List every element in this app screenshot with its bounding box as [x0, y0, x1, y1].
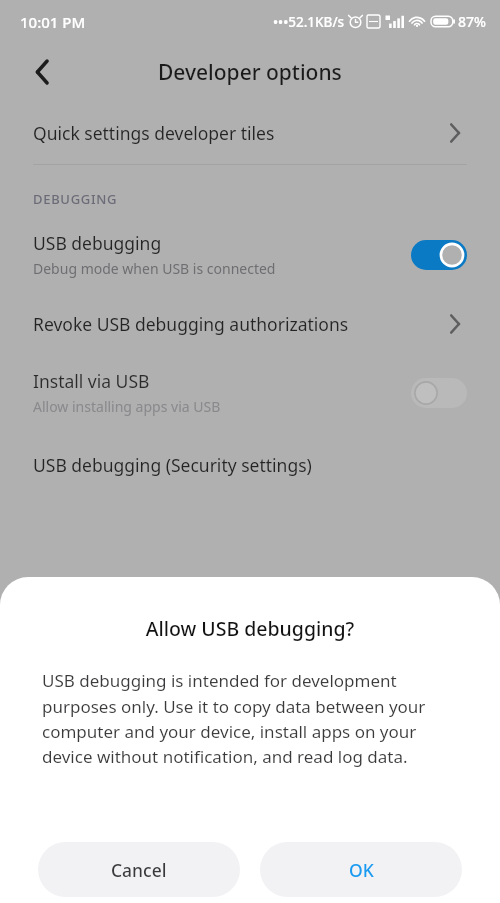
staticText: Developer options [158, 58, 342, 87]
staticText: Debug mode when USB is connected [33, 259, 276, 278]
button[interactable]: OK [260, 842, 462, 897]
staticText: USB debugging is intended for developmen… [42, 669, 460, 768]
button[interactable]: Install via USB [0, 355, 500, 430]
staticText: Allow USB debugging? [0, 615, 500, 642]
staticText: 87% [458, 12, 486, 31]
staticText: OK [349, 858, 374, 882]
staticText: •••52.1KB/s [273, 13, 345, 31]
button[interactable]: Cancel [38, 842, 240, 897]
button[interactable]: Toggle off [411, 378, 467, 408]
staticText: Allow installing apps via USB [33, 397, 221, 416]
staticText: USB debugging (Security settings) [33, 453, 467, 477]
staticText: Install via USB [33, 369, 150, 393]
staticText: 10:01 PM [20, 12, 86, 32]
staticText: DEBUGGING [33, 190, 118, 208]
button[interactable]: Back [25, 54, 61, 90]
other: Open [441, 120, 467, 146]
button[interactable]: Quick settings developer tiles [0, 101, 500, 164]
staticText: USB debugging [33, 231, 162, 255]
other: Open [441, 311, 467, 337]
button[interactable]: USB debugging (Security settings) [0, 430, 500, 500]
staticText: Cancel [111, 858, 167, 882]
button[interactable]: Revoke USB debugging authorizations [0, 292, 500, 355]
staticText: Quick settings developer tiles [33, 121, 441, 145]
staticText: Revoke USB debugging authorizations [33, 312, 441, 336]
button[interactable]: Toggle on [411, 240, 467, 270]
button[interactable]: USB debugging [0, 217, 500, 292]
